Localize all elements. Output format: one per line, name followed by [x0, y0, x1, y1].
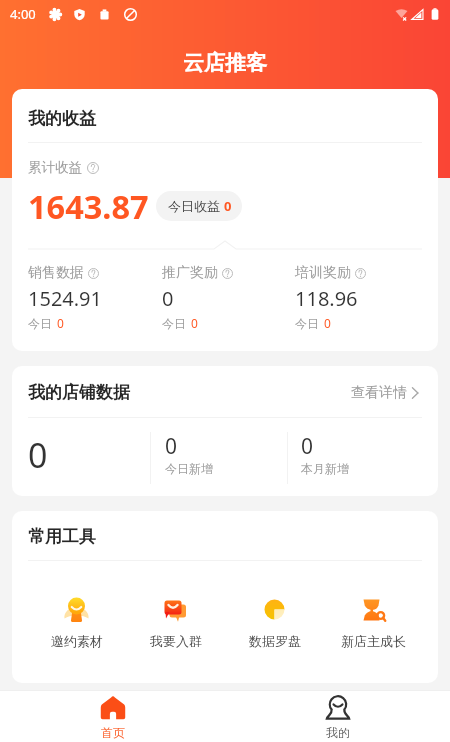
staticText: 邀约素材 — [51, 633, 103, 649]
staticText: 今日收益 — [168, 198, 220, 214]
button[interactable]: 首页 — [0, 691, 225, 742]
staticText: 我要入群 — [150, 633, 202, 649]
staticText: 我的 — [326, 725, 350, 740]
staticText: 0 — [165, 432, 178, 461]
button[interactable]: 0 — [287, 418, 424, 496]
staticText: 推广奖励 — [162, 264, 218, 282]
staticText: 0 — [57, 315, 64, 331]
staticText: 首页 — [101, 725, 125, 740]
staticText: 今日新增 — [165, 461, 213, 476]
staticText: 今日 — [295, 316, 319, 331]
button[interactable]: 推广奖励 — [162, 264, 295, 331]
button[interactable]: 培训奖励 — [295, 264, 428, 331]
button[interactable]: 数据罗盘 — [225, 597, 324, 649]
staticText: 0 — [162, 285, 174, 312]
button[interactable]: 0 — [150, 418, 287, 496]
staticText: 1643.87 — [28, 184, 149, 228]
staticText: 查看详情 — [351, 384, 407, 402]
staticText: 4:00 — [10, 5, 36, 23]
staticText: 我的店铺数据 — [28, 382, 130, 403]
staticText: 118.96 — [295, 285, 358, 312]
button[interactable]: 销售数据 — [28, 264, 162, 331]
button[interactable]: 累计收益 — [28, 159, 99, 176]
button[interactable]: 邀约素材 — [27, 597, 126, 649]
staticText: 培训奖励 — [295, 264, 351, 282]
button[interactable]: 0 — [12, 418, 150, 496]
staticText: 0 — [28, 432, 48, 478]
staticText: 销售数据 — [28, 264, 84, 282]
staticText: 常用工具 — [28, 526, 96, 547]
button[interactable]: 我的 — [225, 691, 450, 742]
button[interactable]: 新店主成长 — [324, 597, 423, 649]
staticText: 0 — [224, 197, 232, 215]
staticText: 今日 — [162, 316, 186, 331]
staticText: 数据罗盘 — [249, 633, 301, 649]
staticText: 云店推客 — [0, 50, 450, 76]
button[interactable]: 今日收益 — [156, 191, 242, 221]
staticText: 0 — [191, 315, 198, 331]
staticText: 1524.91 — [28, 285, 102, 312]
staticText: 新店主成长 — [341, 633, 406, 649]
button[interactable]: 查看详情 — [351, 384, 419, 402]
staticText: 累计收益 — [28, 159, 82, 176]
button[interactable]: 我要入群 — [126, 597, 225, 649]
staticText: 今日 — [28, 316, 52, 331]
staticText: 本月新增 — [301, 461, 349, 476]
staticText: 0 — [324, 315, 331, 331]
staticText: 0 — [301, 432, 314, 461]
staticText: 我的收益 — [28, 108, 96, 129]
